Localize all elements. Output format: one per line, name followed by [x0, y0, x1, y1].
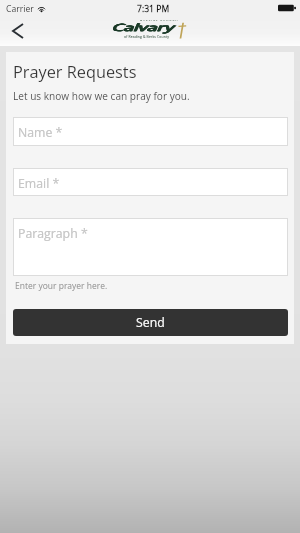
staticText: Carrier	[6, 3, 34, 15]
staticText: of Reading & Berks County	[124, 35, 170, 39]
staticText: 7:31 PM	[137, 3, 170, 15]
button[interactable]: Back	[5, 17, 31, 44]
staticText: Calvary	[112, 21, 174, 35]
staticText: Paragraph *	[18, 225, 88, 242]
staticText: Calvary	[111, 21, 173, 35]
staticText: Let us know how we can pray for you.	[13, 89, 190, 103]
staticText: BAPTIST CHURCH	[140, 19, 179, 22]
staticText: Calvary	[111, 21, 173, 35]
staticText: Calvary	[111, 21, 173, 35]
staticText: Enter your prayer here.	[15, 280, 108, 292]
staticText: Prayer Requests	[13, 61, 137, 83]
staticText: Email *	[18, 175, 60, 192]
staticText: Name *	[18, 124, 63, 141]
staticText: Send	[136, 314, 165, 331]
button[interactable]: Name *	[13, 117, 288, 146]
button[interactable]: Email *	[13, 168, 288, 196]
button[interactable]: Paragraph *	[13, 218, 288, 276]
staticText: Calvary	[111, 21, 173, 35]
button[interactable]: Send	[13, 309, 288, 336]
staticText: Calvary	[112, 21, 174, 35]
